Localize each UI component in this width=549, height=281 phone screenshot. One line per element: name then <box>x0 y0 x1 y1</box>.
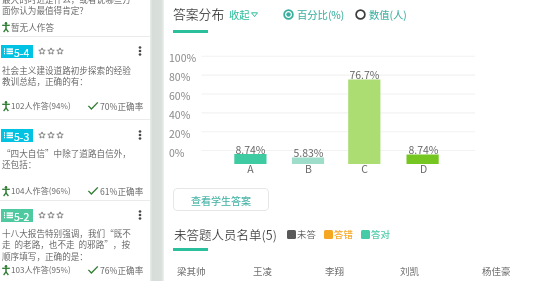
staticText: 刘凯 <box>400 264 420 278</box>
staticText: 20% <box>169 126 201 141</box>
button[interactable]: More options <box>133 208 146 222</box>
button[interactable]: 王凌 <box>253 264 273 278</box>
button[interactable]: 答对 <box>361 227 390 241</box>
staticText: 8.74% <box>224 142 277 157</box>
staticText: 未答 <box>297 227 316 241</box>
staticText: 5-4 <box>14 45 30 58</box>
staticText: 最大的时进是什么，或者说哪些方 面你认为最值得肯定？ <box>2 0 131 17</box>
button[interactable]: 刘凯 <box>400 264 420 278</box>
staticText: A <box>224 161 277 176</box>
button[interactable]: 李翔 <box>325 264 345 278</box>
button[interactable]: 最大的时进是什么，或者说哪些方 面你认为最值得肯定？ <box>0 0 150 23</box>
staticText: 答错 <box>334 227 353 241</box>
staticText: B <box>282 161 335 176</box>
staticText: 杨佳豪 <box>482 264 511 278</box>
staticText: 暂无人作答 <box>11 21 54 33</box>
button[interactable]: 5-4 <box>4 45 30 58</box>
staticText: D <box>397 161 450 176</box>
button[interactable]: 杨佳豪 <box>482 264 511 278</box>
staticText: 查看学生答案 <box>191 193 251 207</box>
button[interactable]: 答错 <box>324 227 353 241</box>
staticText: 76.7% <box>338 67 391 82</box>
staticText: 5-3 <box>14 129 30 142</box>
staticText: 100% <box>169 50 201 65</box>
staticText: 80% <box>169 69 201 84</box>
staticText: 答对 <box>371 227 390 241</box>
staticText: 5.83% <box>282 145 335 160</box>
button[interactable]: More options <box>133 128 146 142</box>
staticText: 103人作答(95%) <box>11 264 71 276</box>
button[interactable]: 5-3 <box>4 129 30 142</box>
staticText: 104人作答(96%) <box>11 185 71 197</box>
staticText: 5-2 <box>14 209 30 222</box>
staticText: 百分比(%) <box>297 7 345 22</box>
staticText: 答案分布 <box>173 4 225 23</box>
button[interactable]: 未答 <box>287 227 316 241</box>
staticText: 未答题人员名单(5) <box>174 225 277 243</box>
staticText: 61%正确率 <box>100 185 144 197</box>
staticText: 十八大报告特别强调，我们“既不走 的老路，也不走 的邪路”，按顺序填写，正确的是… <box>2 227 133 263</box>
staticText: “四大自信”中除了道路自信外，还包括： <box>2 147 135 171</box>
button[interactable]: 5-2 <box>4 209 30 222</box>
staticText: C <box>338 161 391 176</box>
staticText: 社会主义建设道路初步探索的经验教训总结，正确的有： <box>2 64 135 88</box>
button[interactable]: More options <box>133 44 146 58</box>
staticText: 70%正确率 <box>100 100 144 112</box>
staticText: 收起 <box>229 7 250 22</box>
staticText: 李翔 <box>325 264 345 278</box>
button[interactable]: 百分比(%) <box>283 7 345 22</box>
staticText: 王凌 <box>253 264 273 278</box>
staticText: 40% <box>169 107 201 122</box>
staticText: 梁其帅 <box>177 264 206 278</box>
button[interactable]: 梁其帅 <box>177 264 206 278</box>
staticText: 60% <box>169 88 201 103</box>
button[interactable]: 收起 <box>229 7 258 22</box>
staticText: 8.74% <box>397 142 450 157</box>
button[interactable]: 数值(人) <box>355 7 407 22</box>
staticText: 数值(人) <box>369 7 407 22</box>
staticText: 0% <box>169 145 201 160</box>
staticText: 76%正确率 <box>100 264 144 276</box>
staticText: 102人作答(94%) <box>11 100 71 112</box>
button[interactable]: 查看学生答案 <box>173 188 269 211</box>
